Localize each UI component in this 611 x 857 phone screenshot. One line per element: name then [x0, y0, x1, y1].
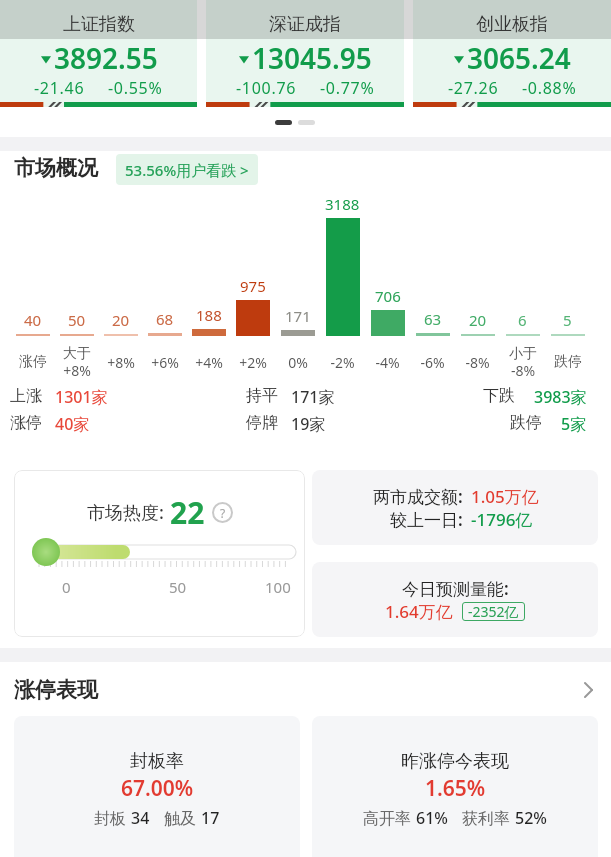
staticText: 40 [24, 310, 42, 330]
staticText: 3983家 [534, 386, 587, 408]
staticText: -0.77% [320, 77, 375, 99]
staticText: 1.05万亿 [471, 485, 539, 508]
staticText: -2352亿 [468, 602, 519, 621]
staticText: 50 [68, 310, 86, 330]
staticText: -100.76 [236, 77, 297, 99]
staticText: 上证指数 [63, 13, 135, 36]
staticText: -0.55% [108, 77, 163, 99]
staticText: 上涨 [10, 386, 42, 406]
staticText: 53.56%用户看跌 > [125, 160, 249, 180]
staticText: 市场热度: [87, 500, 164, 525]
staticText: 67.00% [121, 774, 194, 803]
staticText: 40家 [55, 413, 90, 435]
staticText: -8% [465, 353, 490, 372]
staticText: +6% [151, 353, 179, 372]
button[interactable]: 深证成指 [206, 0, 404, 107]
staticText: 下跌 [483, 386, 515, 406]
staticText: 5家 [561, 413, 587, 435]
staticText: 20 [469, 310, 487, 330]
staticText: ? [220, 505, 226, 521]
staticText: 13045.95 [252, 39, 372, 77]
staticText: 获利率 [462, 807, 515, 829]
staticText: 63 [424, 309, 442, 329]
staticText: 高开率 [363, 807, 416, 829]
staticText: -4% [375, 353, 400, 372]
staticText: -2% [330, 353, 355, 372]
staticText: -21.46 [34, 77, 85, 99]
staticText: 61% [416, 807, 448, 829]
staticText: -0.88% [522, 77, 577, 99]
button[interactable]: 市场热度: [14, 470, 305, 637]
staticText: 封板率 [130, 750, 184, 773]
staticText: 较上一日: [390, 508, 463, 531]
staticText: 706 [375, 286, 401, 306]
staticText: 5 [563, 310, 572, 330]
staticText: +2% [239, 353, 267, 372]
staticText: 19家 [291, 413, 326, 435]
staticText: 今日预测量能: [402, 577, 509, 600]
staticText: -27.26 [448, 77, 499, 99]
button[interactable]: 创业板指 [413, 0, 611, 107]
staticText: 100 [265, 577, 291, 597]
button[interactable]: 封板率 [14, 716, 300, 857]
staticText: +4% [195, 353, 223, 372]
staticText: +8% [107, 353, 135, 372]
staticText: 6 [518, 310, 527, 330]
button[interactable]: 两市成交额: [312, 470, 598, 545]
staticText: 两市成交额: [373, 485, 463, 508]
staticText: 20 [112, 310, 130, 330]
staticText: -1796亿 [471, 508, 533, 531]
staticText: 跌停 [554, 353, 582, 371]
staticText: 0% [288, 353, 308, 372]
staticText: 创业板指 [476, 13, 548, 36]
staticText: 171 [285, 306, 311, 326]
staticText: 34 [131, 807, 150, 829]
staticText: 52% [515, 807, 547, 829]
staticText: 触及 [164, 807, 201, 829]
button[interactable]: 上证指数 [0, 0, 197, 107]
staticText: 涨停 [19, 353, 47, 371]
staticText: 昨涨停今表现 [401, 750, 509, 773]
staticText: 跌停 [510, 413, 542, 433]
staticText: 171家 [291, 386, 335, 408]
staticText: 50 [169, 577, 187, 597]
staticText: 22 [170, 492, 205, 533]
staticText: -6% [420, 353, 445, 372]
staticText: 3188 [325, 194, 360, 214]
button[interactable]: 昨涨停今表现 [312, 716, 598, 857]
staticText: 涨停 [10, 413, 42, 433]
staticText: 涨停表现 [14, 677, 98, 703]
button[interactable]: 今日预测量能: [312, 562, 598, 637]
staticText: 持平 [246, 386, 278, 406]
staticText: 0 [62, 577, 71, 597]
staticText: 大于 +8% [63, 345, 91, 380]
button[interactable]: 53.56%用户看跌 > [116, 154, 258, 185]
staticText: 975 [240, 276, 266, 296]
staticText: 市场概况 [14, 155, 98, 181]
staticText: 小于 -8% [509, 345, 537, 380]
staticText: 68 [156, 309, 174, 329]
staticText: 1.64万亿 [385, 600, 453, 623]
staticText: 封板 [94, 807, 131, 829]
staticText: 188 [196, 305, 222, 325]
staticText: 深证成指 [269, 13, 341, 36]
staticText: 停牌 [246, 413, 278, 433]
staticText: 3892.55 [54, 39, 158, 77]
staticText: 3065.24 [467, 39, 571, 77]
staticText: 1301家 [55, 386, 108, 408]
staticText: 17 [201, 807, 220, 829]
staticText: 1.65% [425, 774, 486, 803]
